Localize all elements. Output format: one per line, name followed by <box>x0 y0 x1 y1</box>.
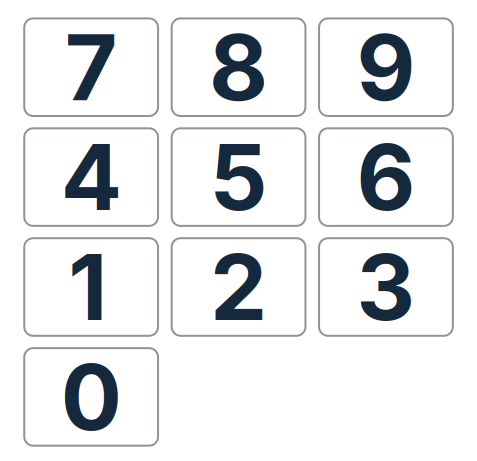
staticText: 1 <box>68 232 107 342</box>
staticText: 4 <box>61 122 122 232</box>
button[interactable]: 1 <box>24 238 158 336</box>
staticText: 9 <box>356 12 415 122</box>
button[interactable]: 0 <box>24 348 158 446</box>
button[interactable]: 3 <box>319 238 453 336</box>
staticText: 7 <box>65 12 118 122</box>
button[interactable]: 9 <box>319 18 453 116</box>
staticText: 0 <box>61 342 122 452</box>
staticText: 6 <box>356 122 415 232</box>
button[interactable]: 2 <box>172 238 305 336</box>
staticText: 5 <box>210 122 268 232</box>
staticText: 8 <box>209 12 268 122</box>
staticText: 3 <box>356 232 415 342</box>
button[interactable]: 7 <box>24 18 158 116</box>
button[interactable]: 8 <box>172 18 305 116</box>
button[interactable]: 5 <box>172 128 305 226</box>
staticText: 2 <box>210 232 267 342</box>
button[interactable]: 6 <box>319 128 453 226</box>
button[interactable]: 4 <box>24 128 158 226</box>
